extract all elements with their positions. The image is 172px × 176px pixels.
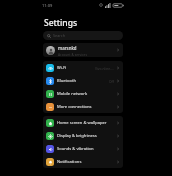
button[interactable]: Home screen & wallpaper <box>43 116 123 129</box>
staticText: Settings <box>44 17 78 29</box>
staticText: More connections <box>57 104 92 110</box>
button[interactable]: Mobile network <box>43 87 123 100</box>
staticText: Search <box>53 33 66 38</box>
button[interactable]: marsnkd <box>43 43 123 57</box>
staticText: Home screen & wallpaper <box>57 120 107 126</box>
button[interactable]: Wi-Fi <box>43 61 123 74</box>
button[interactable]: Sounds & vibration <box>43 142 123 155</box>
staticText: Mobile network <box>57 91 88 97</box>
button[interactable]: Display & brightness <box>43 129 123 142</box>
button[interactable]: More connections <box>43 100 123 113</box>
button[interactable]: Notifications <box>43 155 123 168</box>
staticText: Notifications <box>57 159 82 165</box>
button[interactable]: Search <box>43 31 123 40</box>
staticText: Wi-Fi <box>57 65 67 71</box>
staticText: Account & services <box>58 52 88 56</box>
button[interactable]: Bluetooth <box>43 74 123 87</box>
staticText: Display & brightness <box>57 133 97 139</box>
staticText: Bluetooth <box>57 78 76 84</box>
staticText: Off <box>109 79 114 83</box>
staticText: marsnkd <box>58 45 77 51</box>
staticText: 11:09 <box>42 3 53 8</box>
staticText: Vivo-nline-... <box>95 66 114 70</box>
staticText: Sounds & vibration <box>57 146 94 152</box>
